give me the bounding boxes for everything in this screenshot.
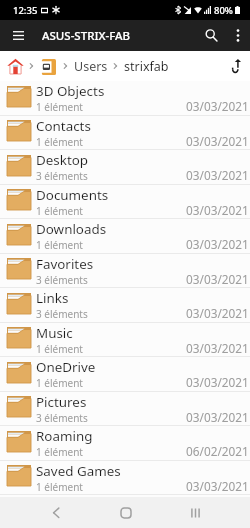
staticText: 1 élément xyxy=(36,238,83,252)
button[interactable]: Users xyxy=(74,58,108,75)
staticText: 1 élément xyxy=(36,100,83,114)
staticText: 06/02/2021 xyxy=(186,443,249,459)
staticText: 1 élément xyxy=(36,342,83,356)
button[interactable]: This PC xyxy=(38,56,59,77)
staticText: Downloads xyxy=(36,220,107,238)
button[interactable]: Favorites xyxy=(0,254,250,288)
staticText: 1 élément xyxy=(36,135,83,149)
button[interactable]: Home xyxy=(85,497,167,528)
button[interactable]: Search xyxy=(197,20,225,51)
staticText: 3 éléments xyxy=(36,411,88,425)
button[interactable]: Roaming xyxy=(0,426,250,461)
button[interactable]: Music xyxy=(0,323,250,357)
button[interactable]: OneDrive xyxy=(0,357,250,392)
button[interactable]: Links xyxy=(0,288,250,323)
staticText: 3 éléments xyxy=(36,307,88,321)
staticText: 03/03/2021 xyxy=(186,478,249,494)
staticText: 3 éléments xyxy=(36,169,88,183)
button[interactable]: Saved Games xyxy=(0,461,250,495)
staticText: 03/03/2021 xyxy=(186,202,249,218)
button[interactable]: Back xyxy=(26,497,85,528)
staticText: Roaming xyxy=(36,427,93,445)
staticText: 12:35 xyxy=(13,4,38,17)
staticText: 1 élément xyxy=(36,480,83,494)
staticText: Desktop xyxy=(36,151,89,169)
staticText: 03/03/2021 xyxy=(186,133,249,149)
button[interactable]: Downloads xyxy=(0,219,250,254)
button[interactable]: Desktop xyxy=(0,150,250,185)
staticText: Contacts xyxy=(36,117,91,135)
staticText: ASUS-STRIX-FAB xyxy=(42,28,131,44)
staticText: Favorites xyxy=(36,255,94,273)
staticText: Links xyxy=(36,289,69,307)
staticText: 3 éléments xyxy=(36,273,88,287)
button[interactable]: Up one level xyxy=(225,56,245,76)
staticText: Saved Games xyxy=(36,462,121,480)
staticText: Documents xyxy=(36,186,109,204)
staticText: 80% xyxy=(214,4,233,17)
staticText: 03/03/2021 xyxy=(186,271,249,287)
staticText: 1 élément xyxy=(36,376,83,390)
staticText: Music xyxy=(36,324,73,342)
staticText: 03/03/2021 xyxy=(186,374,249,390)
button[interactable]: Home xyxy=(5,56,25,76)
staticText: Pictures xyxy=(36,393,87,411)
staticText: 03/03/2021 xyxy=(186,340,249,356)
button[interactable]: Contacts xyxy=(0,116,250,150)
staticText: 03/03/2021 xyxy=(186,305,249,321)
staticText: 1 élément xyxy=(36,445,83,459)
button[interactable]: strixfab xyxy=(124,58,169,75)
staticText: 3D Objects xyxy=(36,82,105,100)
button[interactable]: More options xyxy=(225,20,250,51)
button[interactable]: Recent apps xyxy=(167,497,224,528)
staticText: OneDrive xyxy=(36,358,96,376)
staticText: 03/03/2021 xyxy=(186,409,249,425)
staticText: 1 élément xyxy=(36,204,83,218)
button[interactable]: 3D Objects xyxy=(0,81,250,116)
button[interactable]: Documents xyxy=(0,185,250,219)
button[interactable]: Pictures xyxy=(0,392,250,426)
button[interactable]: Open navigation drawer xyxy=(0,20,36,51)
staticText: 03/03/2021 xyxy=(186,167,249,183)
staticText: 03/03/2021 xyxy=(186,98,249,114)
staticText: 03/03/2021 xyxy=(186,236,249,252)
